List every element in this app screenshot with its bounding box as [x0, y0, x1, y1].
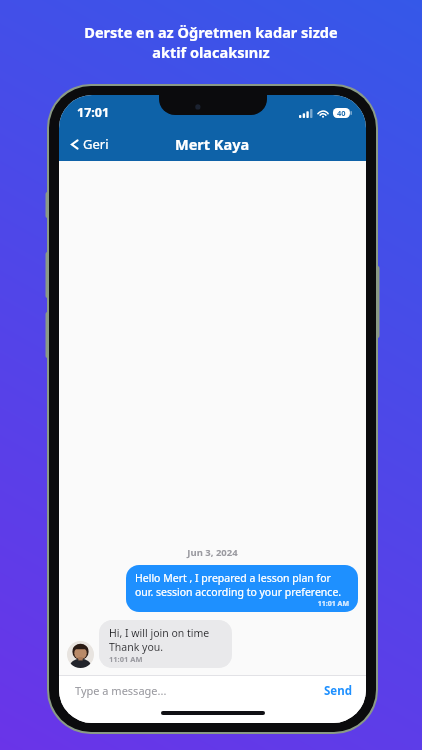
staticText: Thank you.: [109, 640, 164, 654]
staticText: 17:01: [77, 104, 110, 121]
staticText: Hello Mert , I prepared a lesson plan fo…: [135, 571, 349, 599]
staticText: aktif olacaksınız: [152, 42, 270, 62]
button[interactable]: Geri: [59, 131, 117, 157]
button[interactable]: Type a message...: [59, 679, 207, 702]
button[interactable]: Hello Mert , I prepared a lesson plan fo…: [126, 565, 358, 612]
staticText: Mert Kaya: [175, 134, 250, 154]
staticText: Derste en az Öğretmen kadar sizde: [84, 22, 338, 42]
staticText: 40: [337, 108, 346, 118]
staticText: Jun 3, 2024: [67, 546, 358, 559]
button[interactable]: Hi, I will join on time: [99, 620, 232, 668]
staticText: 11:01 AM: [109, 654, 143, 664]
staticText: Hi, I will join on time: [109, 626, 210, 640]
staticText: Geri: [83, 135, 109, 153]
staticText: 11:01 AM: [135, 599, 349, 609]
button[interactable]: Send: [310, 679, 366, 703]
